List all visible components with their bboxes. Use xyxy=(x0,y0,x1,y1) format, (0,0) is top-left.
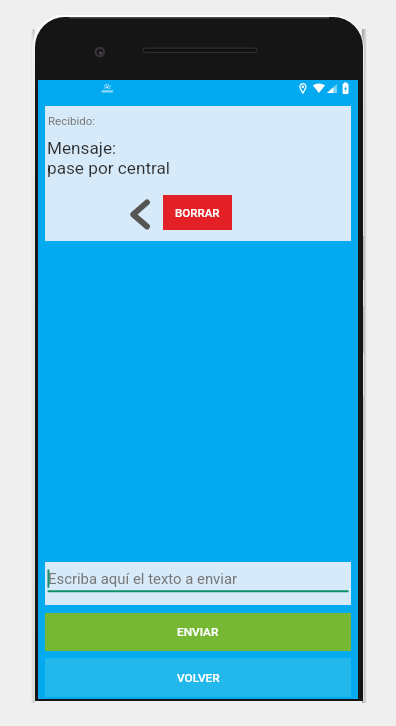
staticText: Recibido: xyxy=(48,114,96,127)
staticText: Mensaje: pase por central xyxy=(47,138,171,178)
button[interactable]: ENVIAR xyxy=(45,613,351,651)
button[interactable]: VOLVER xyxy=(45,658,351,697)
staticText: ENVIAR xyxy=(177,625,219,639)
button[interactable]: Atras xyxy=(127,194,153,232)
button[interactable]: BORRAR xyxy=(163,195,232,230)
staticText: Escriba aquí el texto a enviar xyxy=(48,570,238,587)
staticText: BORRAR xyxy=(175,206,220,219)
staticText: VOLVER xyxy=(177,671,220,685)
button[interactable]: Escriba aquí el texto a enviar xyxy=(45,562,351,605)
